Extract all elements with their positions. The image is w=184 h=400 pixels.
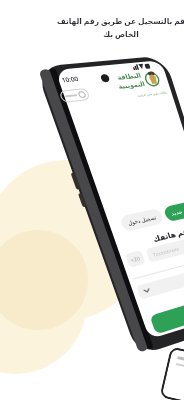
button[interactable] xyxy=(118,206,164,230)
button[interactable] xyxy=(124,250,146,267)
button[interactable] xyxy=(164,200,184,220)
button[interactable] xyxy=(146,312,184,334)
button[interactable] xyxy=(150,246,184,263)
button[interactable] xyxy=(134,284,184,304)
staticText: قم بالتسجيل عن طريق رقم الهاتف الخاص بك xyxy=(36,16,184,39)
